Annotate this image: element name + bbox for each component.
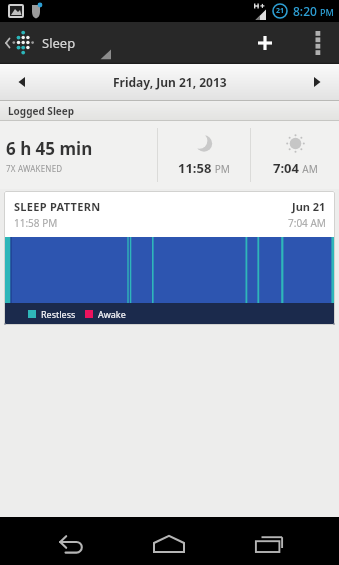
- staticText: Sleep: [42, 34, 76, 52]
- staticText: SLEEP PATTERN: [14, 199, 101, 214]
- button[interactable]: Sleep: [0, 22, 76, 64]
- button[interactable]: 6 h 45 min: [0, 121, 157, 189]
- button[interactable]: [245, 517, 293, 565]
- button[interactable]: Friday, Jun 21, 2013: [113, 74, 227, 90]
- staticText: 21: [276, 6, 285, 16]
- button[interactable]: [47, 517, 95, 565]
- button[interactable]: [247, 22, 283, 64]
- staticText: Friday, Jun 21, 2013: [113, 74, 227, 90]
- staticText: 6 h 45 min: [6, 137, 93, 160]
- button[interactable]: [295, 64, 339, 100]
- button[interactable]: [145, 517, 193, 565]
- staticText: Restless: [41, 308, 76, 320]
- button[interactable]: 11:58 PM: [158, 121, 250, 189]
- button[interactable]: SLEEP PATTERN: [4, 191, 335, 325]
- staticText: 8:20 PM: [293, 3, 334, 19]
- button[interactable]: [0, 64, 44, 100]
- staticText: 11:58 PM: [178, 159, 230, 177]
- button[interactable]: 7:04 AM: [251, 121, 339, 189]
- button[interactable]: [296, 22, 339, 64]
- staticText: 7:04 AM: [273, 159, 318, 177]
- staticText: Jun 21: [292, 199, 326, 214]
- staticText: 7X AWAKENED: [6, 163, 63, 174]
- staticText: Logged Sleep: [8, 104, 75, 118]
- staticText: Awake: [98, 308, 126, 320]
- staticText: 11:58 PM: [14, 216, 58, 230]
- staticText: 7:04 AM: [288, 216, 326, 230]
